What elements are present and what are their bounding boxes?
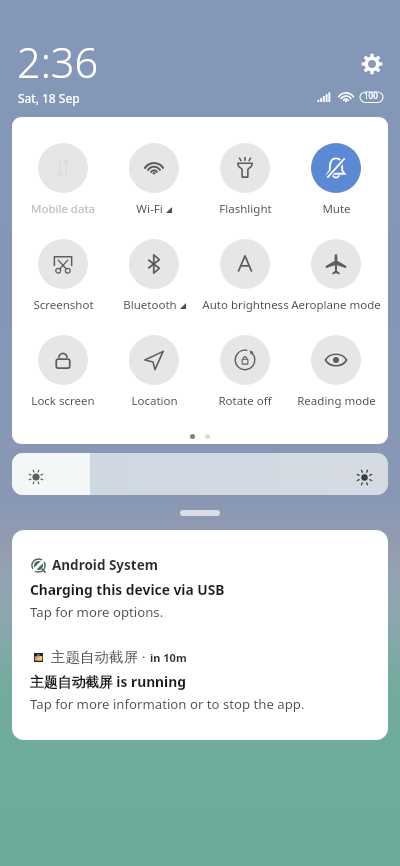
staticText: 2:36: [17, 34, 99, 91]
staticText: Charging this device via USB: [30, 580, 225, 599]
button[interactable]: Settings: [361, 53, 383, 75]
staticText: Auto brightness: [202, 297, 289, 313]
staticText: Location: [131, 393, 178, 409]
button[interactable]: Bluetooth: [104, 239, 204, 313]
button[interactable]: Auto brightness: [195, 239, 295, 313]
staticText: Android System: [52, 556, 158, 574]
staticText: Flashlight: [219, 201, 272, 217]
button[interactable]: Wi-Fi: [104, 143, 204, 217]
button[interactable]: [12, 453, 388, 495]
staticText: Wi-Fi: [136, 201, 163, 217]
staticText: Lock screen: [31, 393, 95, 409]
button[interactable]: Android System: [12, 530, 388, 740]
staticText: Tap for more options.: [30, 603, 164, 621]
button[interactable]: Screenshot: [13, 239, 113, 313]
button[interactable]: Lock screen: [13, 335, 113, 409]
button[interactable]: Aeroplane mode: [286, 239, 386, 313]
staticText: Mute: [322, 201, 351, 217]
button[interactable]: Mobile data: [13, 143, 113, 217]
staticText: 主题自动截屏 is running: [30, 672, 186, 691]
button[interactable]: Flashlight: [195, 143, 295, 217]
button[interactable]: Mute: [286, 143, 386, 217]
staticText: Screenshot: [33, 297, 94, 313]
staticText: Rotate off: [218, 393, 272, 409]
staticText: Bluetooth: [123, 297, 177, 313]
staticText: in 10m: [150, 650, 187, 665]
staticText: 100: [364, 90, 378, 101]
staticText: Aeroplane mode: [291, 297, 381, 313]
staticText: ·: [142, 648, 146, 666]
button[interactable]: Rotate off: [195, 335, 295, 409]
staticText: 主题自动截屏: [51, 648, 138, 666]
staticText: Sat, 18 Sep: [18, 90, 80, 106]
button[interactable]: Reading mode: [286, 335, 386, 409]
staticText: Tap for more information or to stop the …: [30, 695, 305, 713]
staticText: Reading mode: [297, 393, 376, 409]
staticText: Mobile data: [31, 201, 95, 217]
button[interactable]: Location: [104, 335, 204, 409]
